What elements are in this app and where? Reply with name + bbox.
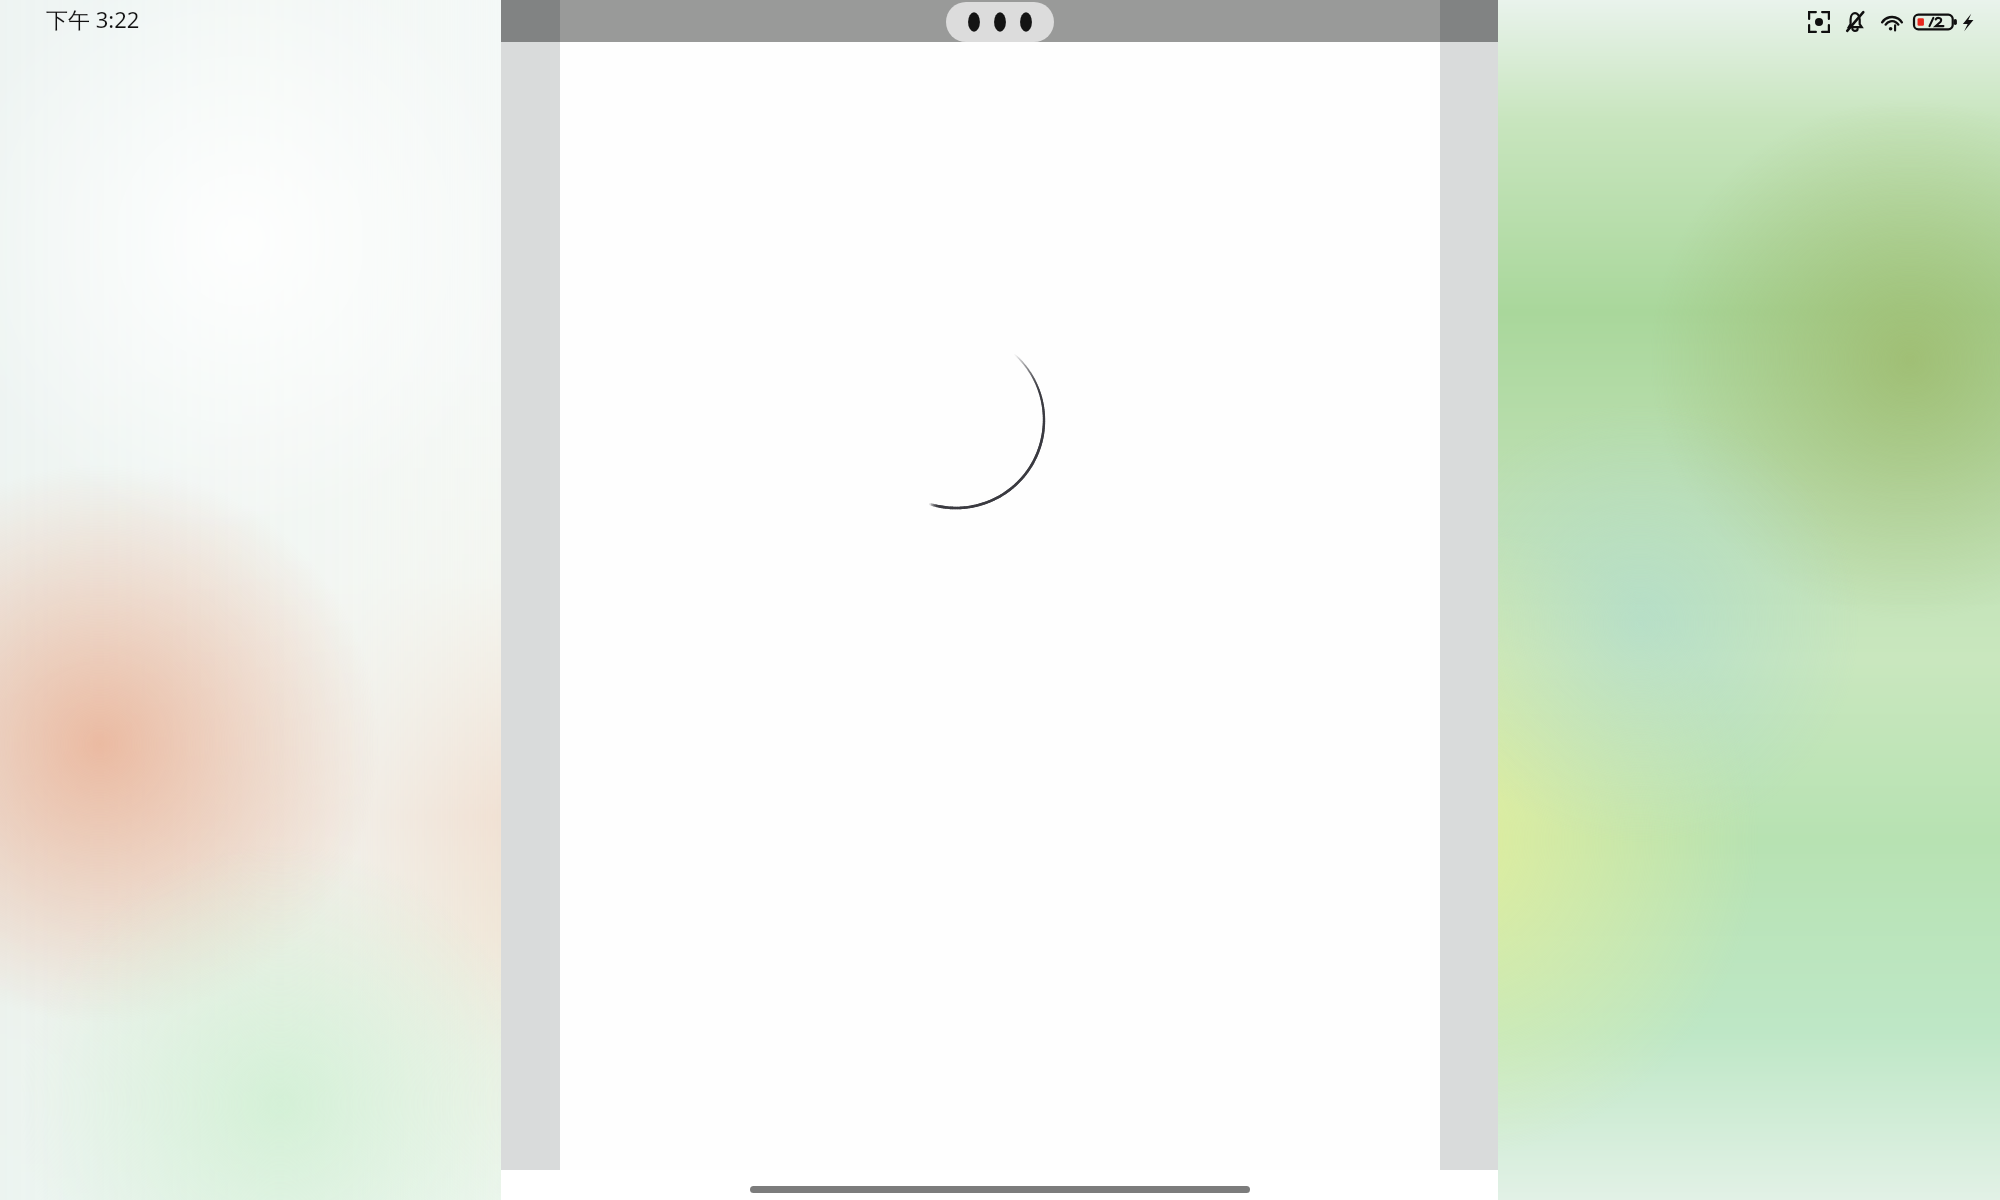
button[interactable]: Window options <box>946 2 1054 42</box>
button[interactable]: Home <box>750 1186 1250 1193</box>
staticText: 下午 3:22 <box>46 4 140 34</box>
